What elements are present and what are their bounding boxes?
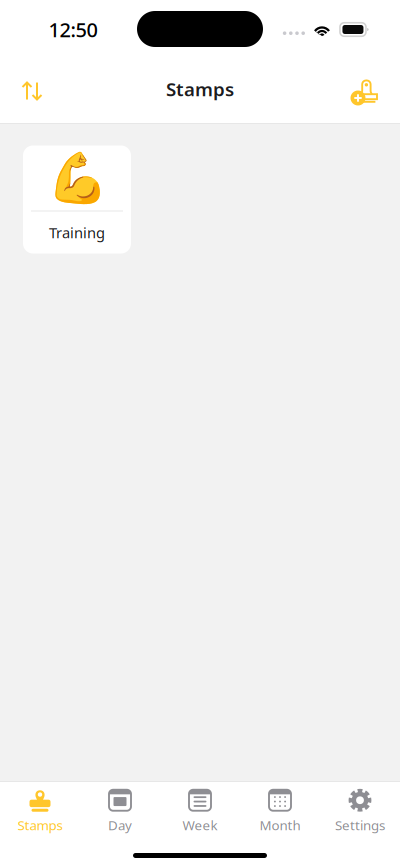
button[interactable]: Sort bbox=[10, 69, 54, 113]
button[interactable]: Week bbox=[160, 778, 240, 834]
button[interactable]: Month bbox=[240, 778, 320, 834]
button[interactable]: Settings bbox=[320, 778, 400, 834]
staticText: Month bbox=[259, 816, 300, 834]
button[interactable]: Add Stamp bbox=[346, 69, 390, 113]
button[interactable]: Day bbox=[80, 778, 160, 834]
button[interactable]: Stamps bbox=[0, 778, 80, 834]
staticText: Settings bbox=[335, 816, 385, 834]
staticText: 💪 bbox=[46, 150, 107, 206]
staticText: Stamps bbox=[17, 816, 62, 834]
staticText: Day bbox=[108, 816, 132, 834]
staticText: Stamps bbox=[166, 77, 234, 101]
staticText: Week bbox=[182, 816, 217, 834]
staticText: 12:50 bbox=[48, 16, 97, 43]
button[interactable]: 💪 bbox=[23, 145, 131, 253]
staticText: Training bbox=[49, 223, 105, 242]
